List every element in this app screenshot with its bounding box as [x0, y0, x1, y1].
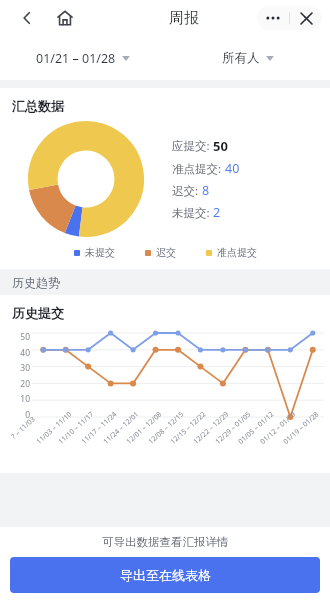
staticText: 12/01 – 12/08 [124, 409, 164, 447]
staticText: 未提交: [172, 205, 210, 221]
staticText: 8 [202, 182, 210, 199]
staticText: 12/29 – 01/05 [213, 409, 253, 447]
staticText: 11/17 – 11/24 [79, 409, 119, 447]
staticText: 12/15 – 12/22 [168, 409, 208, 447]
button[interactable]: 导出至在线表格 [10, 557, 320, 593]
staticText: 未提交 [85, 246, 115, 259]
staticText: 30 [20, 362, 30, 374]
button[interactable]: 未提交 [74, 246, 115, 259]
staticText: 01/21 – 01/28 [36, 50, 116, 67]
staticText: 导出至在线表格 [120, 567, 211, 583]
staticText: 11/24 – 12/01 [101, 409, 141, 447]
staticText: 0 [25, 409, 30, 421]
button[interactable]: Close [290, 6, 322, 30]
staticText: 迟交 [156, 246, 176, 259]
staticText: 可导出数据查看汇报详情 [102, 535, 229, 549]
staticText: 周报 [169, 9, 199, 28]
staticText: 10 [20, 393, 30, 405]
staticText: 12/22 – 12/29 [191, 409, 231, 447]
staticText: 12/08 – 12/15 [146, 409, 186, 447]
staticText: 11/10 – 11/17 [56, 409, 96, 447]
staticText: 准点提交 [217, 246, 257, 259]
button[interactable]: 所有人 [214, 46, 282, 70]
staticText: 40 [20, 347, 30, 359]
staticText: 应提交: [172, 138, 210, 154]
button[interactable]: Home [52, 5, 78, 31]
button[interactable]: Back [14, 5, 40, 31]
staticText: 历史提交 [12, 305, 64, 321]
staticText: 2 [213, 204, 221, 221]
staticText: 汇总数据 [12, 98, 64, 114]
staticText: 01/12 – 01/19 [258, 409, 298, 447]
button[interactable]: More [257, 6, 289, 30]
staticText: 50 [213, 137, 228, 155]
staticText: 历史趋势 [12, 275, 60, 290]
button[interactable]: 01/21 – 01/28 [28, 46, 138, 71]
staticText: ? – 11/03 [9, 415, 38, 441]
staticText: 11/03 – 11/10 [34, 409, 74, 447]
button[interactable]: 迟交 [145, 246, 176, 259]
button[interactable]: 准点提交 [206, 246, 257, 259]
staticText: 准点提交: [172, 161, 222, 177]
staticText: 40 [225, 160, 240, 177]
staticText: 50 [20, 331, 30, 343]
staticText: 所有人 [222, 50, 260, 66]
staticText: 01/19 – 01/28 [281, 409, 321, 447]
staticText: 迟交: [172, 183, 199, 199]
staticText: 20 [20, 378, 30, 390]
staticText: 01/05 – 01/12 [236, 409, 276, 447]
